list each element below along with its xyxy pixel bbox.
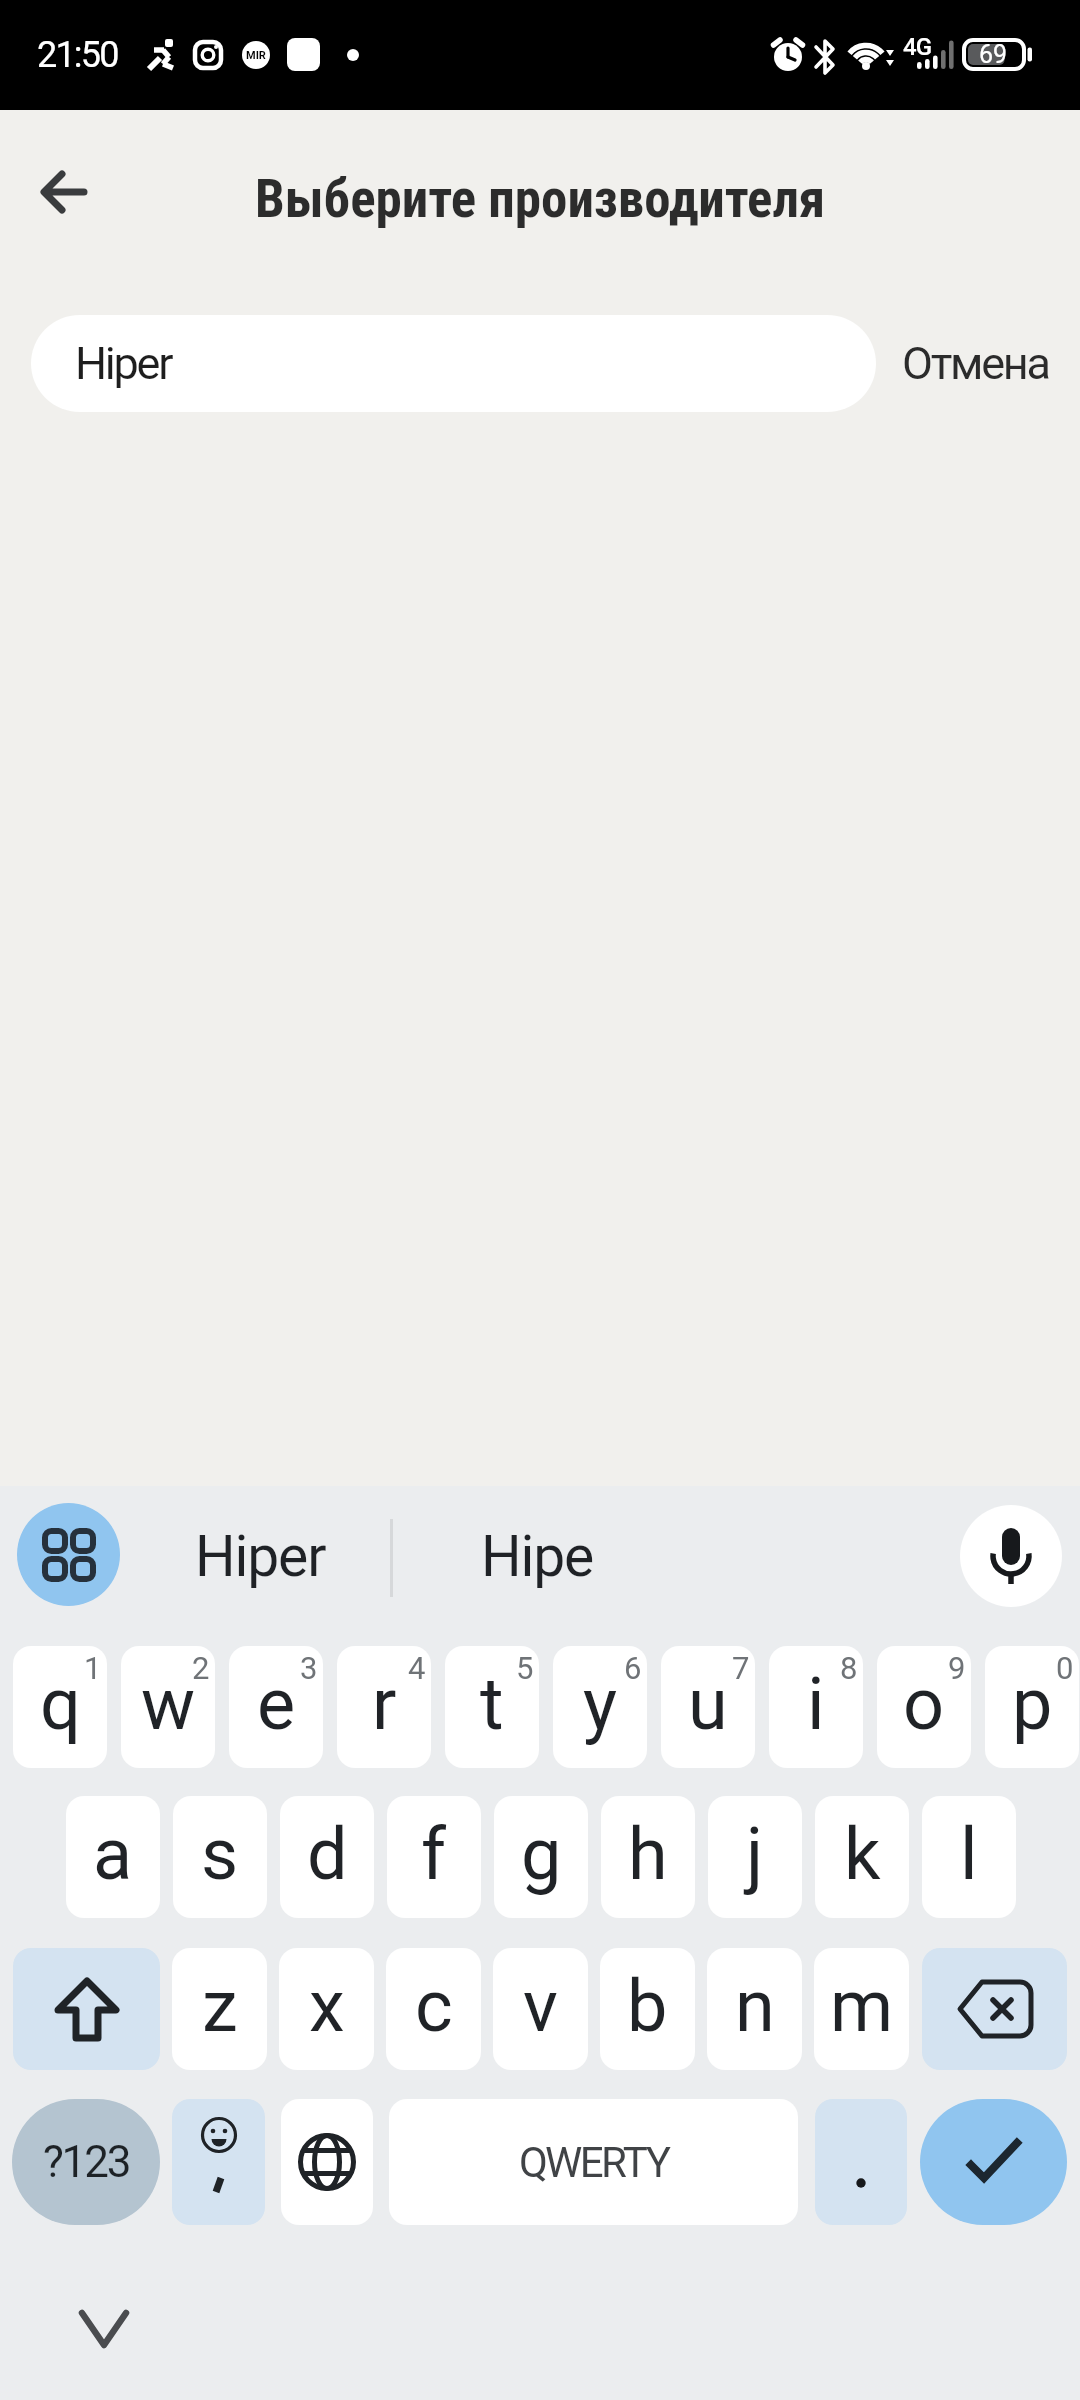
staticText: Отмена xyxy=(902,337,1049,390)
button[interactable] xyxy=(920,2099,1067,2225)
button[interactable]: i xyxy=(769,1646,863,1768)
staticText: z xyxy=(202,1964,238,2048)
staticText: u xyxy=(688,1662,728,1746)
button[interactable] xyxy=(281,2099,373,2225)
button[interactable]: Hiper xyxy=(140,1503,380,1606)
staticText: Выберите производителя xyxy=(255,168,826,230)
staticText: a xyxy=(93,1812,133,1896)
staticText: o xyxy=(903,1662,945,1746)
button[interactable]: r xyxy=(337,1646,431,1768)
button[interactable]: w xyxy=(121,1646,215,1768)
staticText: QWERTY xyxy=(519,2138,669,2187)
staticText: y xyxy=(583,1662,618,1746)
button[interactable]: m xyxy=(814,1948,909,2070)
button[interactable]: b xyxy=(600,1948,695,2070)
staticText: 2 xyxy=(192,1650,210,1686)
staticText: 6 xyxy=(624,1650,642,1686)
staticText: v xyxy=(523,1964,558,2048)
button[interactable] xyxy=(922,1948,1067,2070)
staticText: Hiper xyxy=(195,1523,326,1590)
button[interactable]: c xyxy=(386,1948,481,2070)
staticText: 0 xyxy=(1056,1650,1074,1686)
button[interactable] xyxy=(17,1503,120,1606)
button[interactable]: y xyxy=(553,1646,647,1768)
button[interactable]: Hiper xyxy=(31,315,876,412)
staticText: d xyxy=(307,1812,348,1896)
staticText: 3 xyxy=(300,1650,318,1686)
staticText: g xyxy=(521,1812,562,1896)
button[interactable]: a xyxy=(66,1796,160,1918)
button[interactable]: Отмена xyxy=(875,315,1075,412)
staticText: w xyxy=(141,1662,196,1746)
staticText: r xyxy=(372,1662,397,1746)
staticText: k xyxy=(844,1812,881,1896)
button[interactable]: k xyxy=(815,1796,909,1918)
staticText: x xyxy=(309,1964,345,2048)
button[interactable] xyxy=(960,1505,1062,1607)
button[interactable]: s xyxy=(173,1796,267,1918)
button[interactable]: p xyxy=(985,1646,1079,1768)
staticText: Hipe xyxy=(481,1523,594,1590)
staticText: 4G xyxy=(903,33,932,61)
staticText: q xyxy=(40,1662,81,1746)
staticText: j xyxy=(746,1812,764,1896)
staticText: c xyxy=(415,1964,453,2048)
staticText: Hiper xyxy=(75,337,172,390)
button[interactable]: l xyxy=(922,1796,1016,1918)
staticText: i xyxy=(807,1662,825,1746)
staticText: l xyxy=(960,1812,978,1896)
button[interactable]: t xyxy=(445,1646,539,1768)
staticText: 4 xyxy=(408,1650,426,1686)
button[interactable]: u xyxy=(661,1646,755,1768)
staticText: ?123 xyxy=(43,2136,130,2188)
staticText: MIR xyxy=(246,49,266,62)
button[interactable]: e xyxy=(229,1646,323,1768)
staticText: f xyxy=(421,1812,447,1896)
staticText: 7 xyxy=(732,1650,750,1686)
button[interactable] xyxy=(30,158,98,226)
button[interactable]: f xyxy=(387,1796,481,1918)
button[interactable]: n xyxy=(707,1948,802,2070)
button[interactable]: o xyxy=(877,1646,971,1768)
staticText: b xyxy=(627,1964,668,2048)
button[interactable] xyxy=(66,2295,142,2365)
button[interactable]: v xyxy=(493,1948,588,2070)
button[interactable]: g xyxy=(494,1796,588,1918)
button[interactable] xyxy=(172,2099,265,2225)
button[interactable]: z xyxy=(172,1948,267,2070)
button[interactable]: h xyxy=(601,1796,695,1918)
staticText: 21:50 xyxy=(37,34,118,76)
button[interactable]: Hipe xyxy=(420,1503,655,1606)
button[interactable]: ?123 xyxy=(12,2099,160,2225)
staticText: 5 xyxy=(516,1650,534,1686)
staticText: e xyxy=(257,1662,296,1746)
staticText: 8 xyxy=(840,1650,858,1686)
staticText: s xyxy=(201,1812,239,1896)
staticText: t xyxy=(480,1662,504,1746)
button[interactable] xyxy=(815,2099,907,2225)
staticText: p xyxy=(1012,1662,1053,1746)
button[interactable]: q xyxy=(13,1646,107,1768)
button[interactable]: x xyxy=(279,1948,374,2070)
button[interactable]: QWERTY xyxy=(389,2099,798,2225)
button[interactable]: d xyxy=(280,1796,374,1918)
staticText: 9 xyxy=(948,1650,966,1686)
staticText: h xyxy=(628,1812,668,1896)
button[interactable]: j xyxy=(708,1796,802,1918)
staticText: m xyxy=(830,1964,894,2048)
staticText: n xyxy=(735,1964,775,2048)
button[interactable] xyxy=(13,1948,160,2070)
staticText: 69 xyxy=(979,40,1008,69)
staticText: 1 xyxy=(84,1650,102,1686)
